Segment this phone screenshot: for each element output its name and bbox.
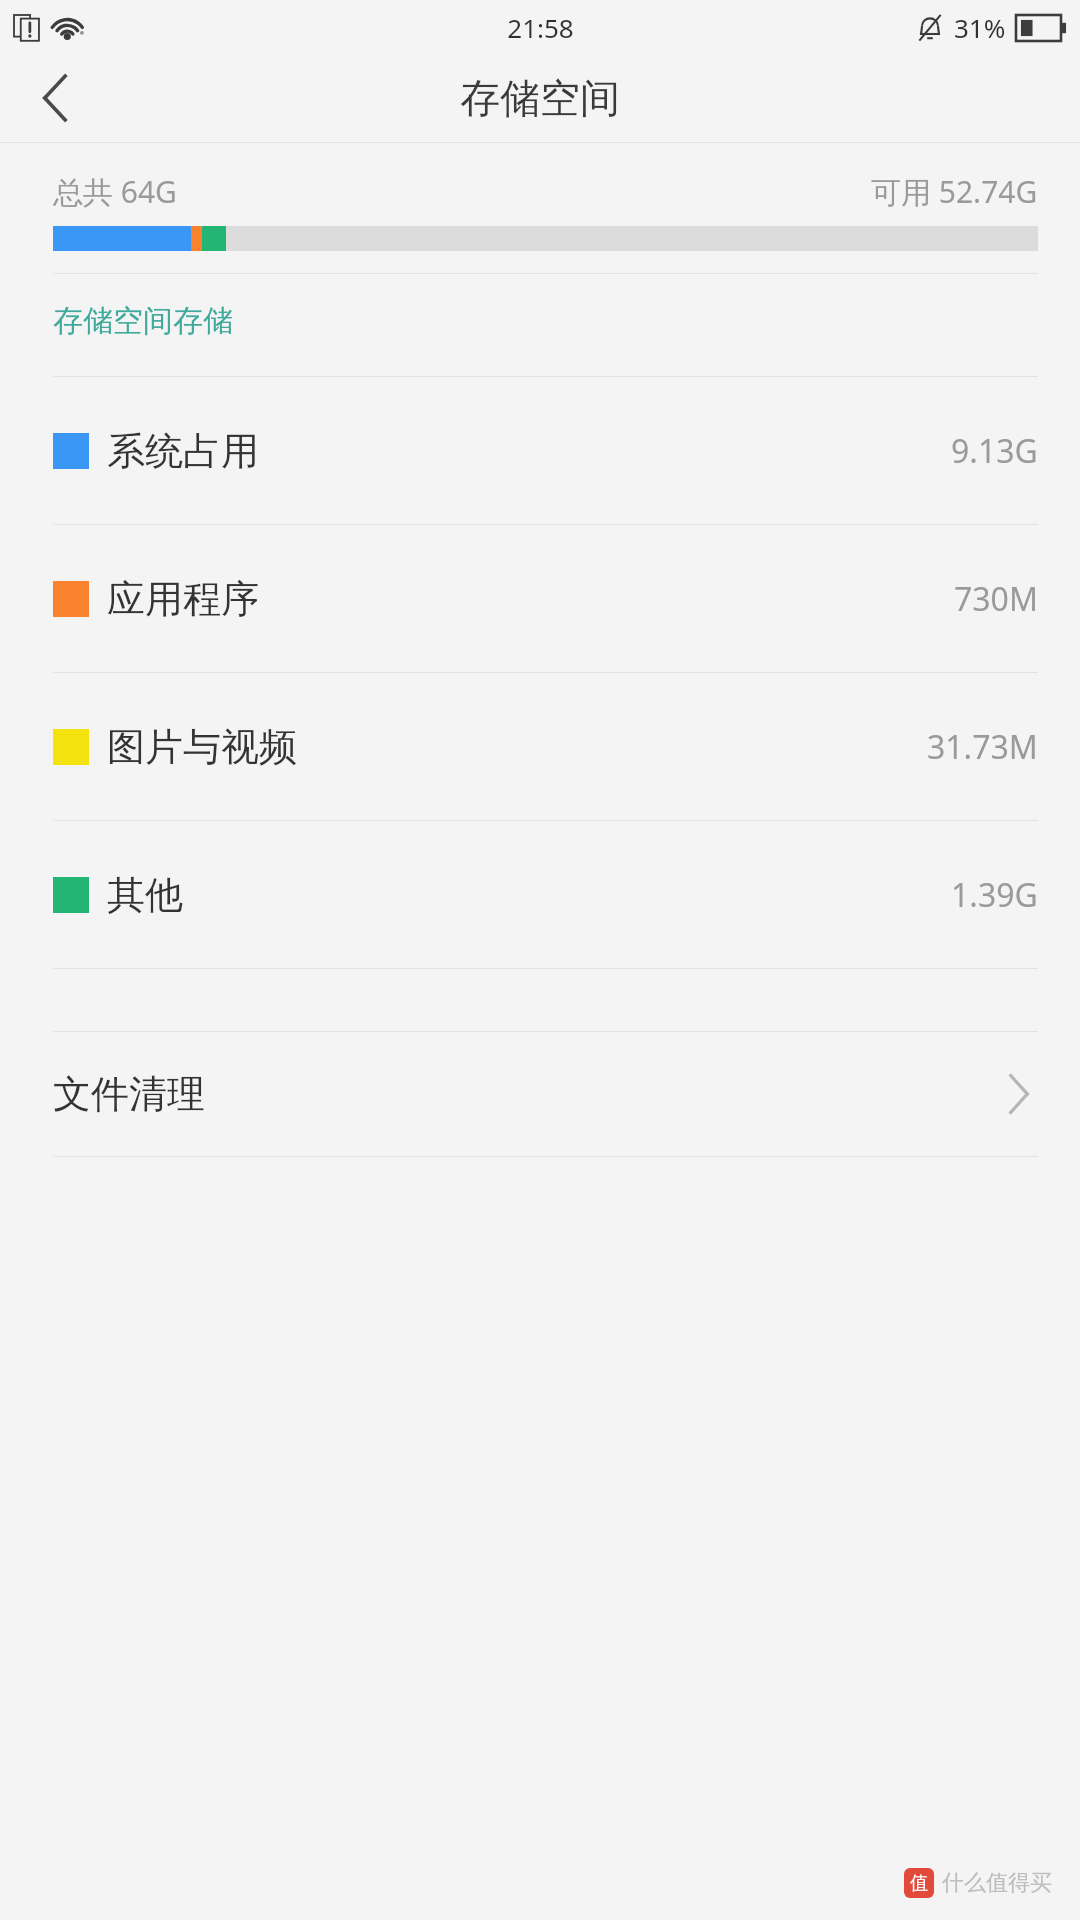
staticText: 其他 (107, 871, 183, 919)
staticText: 31.73M (927, 725, 1038, 769)
staticText: 可用 52.74G (871, 171, 1038, 212)
other: SIM card alert (14, 12, 40, 42)
other: Wi-Fi (52, 14, 86, 40)
staticText: 文件清理 (53, 1070, 205, 1118)
button[interactable]: 文件清理 (0, 1032, 1080, 1156)
staticText: 系统占用 (107, 427, 259, 475)
staticText: 什么值得买 (942, 1869, 1052, 1897)
other: Silent mode (916, 13, 944, 43)
staticText: 应用程序 (107, 575, 259, 623)
staticText: 21:58 (507, 10, 574, 45)
staticText: 730M (954, 577, 1038, 621)
staticText: 1.39G (951, 873, 1038, 917)
staticText: 总共 64G (53, 171, 177, 212)
button[interactable]: 系统占用 (0, 377, 1080, 524)
button[interactable]: 图片与视频 (0, 673, 1080, 820)
staticText: 存储空间存储 (53, 302, 233, 340)
button[interactable]: 应用程序 (0, 525, 1080, 672)
button[interactable]: 其他 (0, 821, 1080, 968)
staticText: 值 (910, 1872, 928, 1895)
staticText: 9.13G (951, 429, 1038, 473)
button[interactable]: Back (0, 54, 110, 142)
staticText: 图片与视频 (107, 723, 297, 771)
staticText: 存储空间 (460, 73, 620, 123)
staticText: 31% (954, 10, 1006, 45)
